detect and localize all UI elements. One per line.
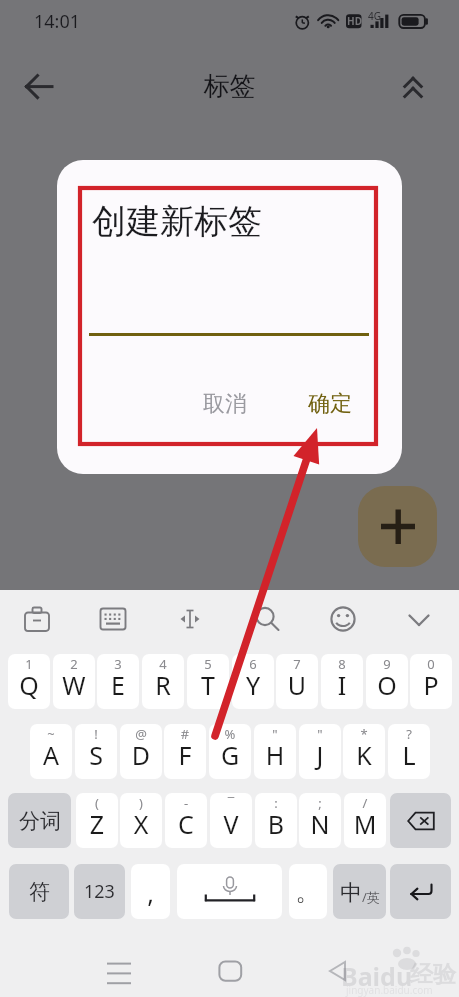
staticText: Q: [8, 668, 50, 702]
staticText: K: [343, 738, 385, 772]
staticText: ,: [131, 876, 170, 910]
button[interactable]: Tool 1: [89, 595, 137, 643]
button[interactable]: 7: [276, 654, 318, 709]
button[interactable]: Home: [206, 949, 254, 997]
button[interactable]: 9: [366, 654, 408, 709]
staticText: L: [388, 738, 430, 772]
staticText: ): [120, 794, 162, 812]
staticText: 4G: [368, 9, 381, 23]
button[interactable]: Collapse: [391, 64, 435, 108]
staticText: 2: [53, 655, 95, 673]
staticText: H: [254, 738, 296, 772]
staticText: ~: [30, 725, 72, 743]
button[interactable]: *: [343, 724, 385, 779]
button[interactable]: (: [76, 793, 118, 848]
staticText: 14:01: [34, 9, 81, 34]
button[interactable]: 3: [97, 654, 139, 709]
staticText: 符: [29, 879, 50, 905]
staticText: 取消: [203, 390, 247, 418]
button[interactable]: Tool 4: [319, 595, 367, 643]
staticText: :: [255, 794, 297, 812]
staticText: HD: [347, 14, 362, 28]
staticText: G: [209, 738, 251, 772]
staticText: ": [299, 725, 341, 743]
button[interactable]: 。: [289, 864, 327, 919]
button[interactable]: #: [164, 724, 206, 779]
button[interactable]: Tool 5: [395, 595, 443, 643]
button[interactable]: ~: [30, 724, 72, 779]
staticText: 。: [289, 876, 327, 907]
button[interactable]: 8: [321, 654, 363, 709]
staticText: S: [75, 738, 117, 772]
button[interactable]: !: [75, 724, 117, 779]
staticText: #: [164, 725, 206, 743]
staticText: W: [53, 668, 95, 702]
button[interactable]: %: [209, 724, 251, 779]
button[interactable]: 5: [187, 654, 229, 709]
staticText: (: [76, 794, 118, 812]
staticText: /: [344, 794, 386, 812]
button[interactable]: 4: [142, 654, 184, 709]
staticText: N: [299, 807, 341, 841]
staticText: M: [344, 807, 386, 841]
staticText: 6: [232, 655, 274, 673]
button[interactable]: ": [254, 724, 296, 779]
button[interactable]: ): [120, 793, 162, 848]
button[interactable]: 123: [74, 864, 125, 919]
staticText: I: [321, 668, 363, 702]
button[interactable]: Add: [358, 486, 437, 567]
button[interactable]: ,: [131, 864, 170, 919]
staticText: jingyan.baidu.com: [346, 983, 433, 997]
staticText: 中: [340, 879, 362, 907]
button[interactable]: Back: [315, 949, 363, 997]
button[interactable]: ": [299, 724, 341, 779]
button[interactable]: ;: [299, 793, 341, 848]
button[interactable]: 确定: [288, 383, 372, 425]
button[interactable]: 中: [333, 864, 386, 919]
button[interactable]: ¯: [210, 793, 252, 848]
button[interactable]: Tool 0: [13, 595, 61, 643]
button[interactable]: 2: [53, 654, 95, 709]
staticText: Baidu: [341, 959, 413, 993]
button[interactable]: @: [120, 724, 162, 779]
staticText: 3: [97, 655, 139, 673]
button[interactable]: 符: [9, 864, 69, 919]
staticText: J: [299, 738, 341, 772]
staticText: U: [276, 668, 318, 702]
button[interactable]: Space: [177, 864, 282, 919]
staticText: 5: [187, 655, 229, 673]
staticText: 分词: [19, 808, 61, 834]
staticText: P: [410, 668, 452, 702]
button[interactable]: Back: [17, 64, 61, 108]
staticText: %: [209, 725, 251, 743]
staticText: *: [343, 725, 385, 743]
staticText: 4: [142, 655, 184, 673]
staticText: E: [97, 668, 139, 702]
staticText: 7: [276, 655, 318, 673]
button[interactable]: Tool 3: [243, 595, 291, 643]
button[interactable]: Enter: [390, 864, 451, 919]
button[interactable]: :: [255, 793, 297, 848]
staticText: ": [254, 725, 296, 743]
staticText: T: [187, 668, 229, 702]
button[interactable]: 分词: [8, 793, 71, 848]
staticText: A: [30, 738, 72, 772]
button[interactable]: 取消: [183, 383, 267, 425]
button[interactable]: /: [344, 793, 386, 848]
button[interactable]: Recents: [95, 949, 143, 997]
button[interactable]: -: [165, 793, 207, 848]
staticText: R: [142, 668, 184, 702]
button[interactable]: 1: [8, 654, 50, 709]
staticText: -: [165, 794, 207, 812]
staticText: F: [164, 738, 206, 772]
staticText: Z: [76, 807, 118, 841]
button[interactable]: 0: [410, 654, 452, 709]
button[interactable]: 6: [232, 654, 274, 709]
staticText: 确定: [308, 390, 352, 418]
staticText: @: [120, 725, 162, 743]
staticText: ?: [388, 725, 430, 743]
staticText: D: [120, 738, 162, 772]
button[interactable]: Tool 2: [166, 595, 214, 643]
button[interactable]: ?: [388, 724, 430, 779]
button[interactable]: Backspace: [390, 793, 451, 848]
